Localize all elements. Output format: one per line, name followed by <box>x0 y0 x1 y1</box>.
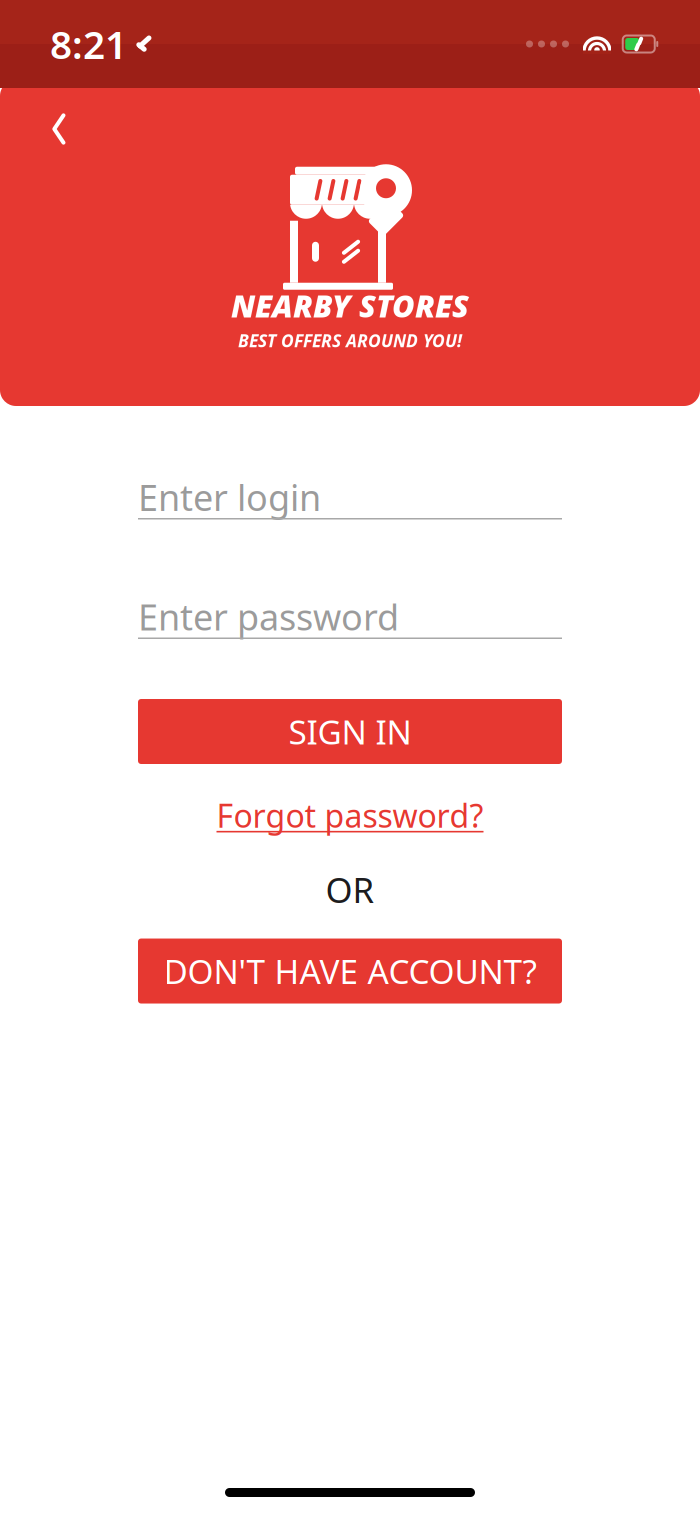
staticText: DON'T HAVE ACCOUNT? <box>163 949 536 993</box>
staticText: Enter login <box>138 473 321 521</box>
staticText: OR <box>325 866 374 912</box>
button[interactable]: SIGN IN <box>138 699 562 764</box>
staticText: SIGN IN <box>288 709 411 754</box>
staticText: 8:21 <box>50 18 127 70</box>
staticText: NEARBY STORES <box>231 285 469 326</box>
staticText: Enter password <box>138 593 399 640</box>
button[interactable]: Back <box>28 98 90 160</box>
button[interactable]: Enter password <box>138 595 562 639</box>
staticText: Forgot password? <box>216 794 483 836</box>
button[interactable]: Enter login <box>138 476 562 519</box>
button[interactable]: DON'T HAVE ACCOUNT? <box>138 938 562 1003</box>
staticText: BEST OFFERS AROUND YOU! <box>238 329 462 352</box>
button[interactable]: Forgot password? <box>216 788 483 842</box>
